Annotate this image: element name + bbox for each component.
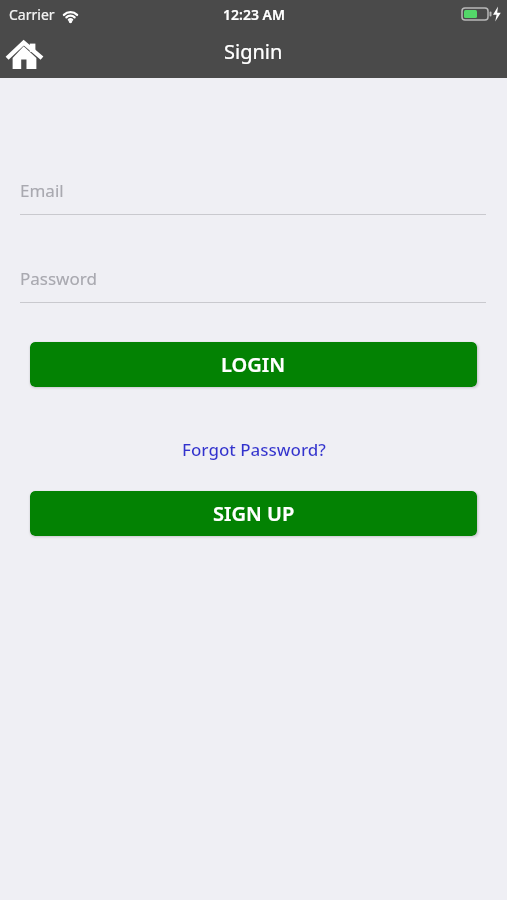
staticText: LOGIN [221, 351, 286, 378]
staticText: Password [20, 267, 97, 290]
button[interactable]: SIGN UP [30, 491, 477, 536]
staticText: Carrier [9, 5, 55, 24]
staticText: Signin [224, 38, 283, 65]
button[interactable]: LOGIN [30, 342, 477, 387]
staticText: Email [20, 179, 64, 202]
staticText: SIGN UP [213, 500, 295, 527]
button[interactable]: Forgot Password? [182, 438, 326, 461]
staticText: 12:23 AM [223, 5, 285, 24]
button[interactable] [8, 37, 41, 70]
